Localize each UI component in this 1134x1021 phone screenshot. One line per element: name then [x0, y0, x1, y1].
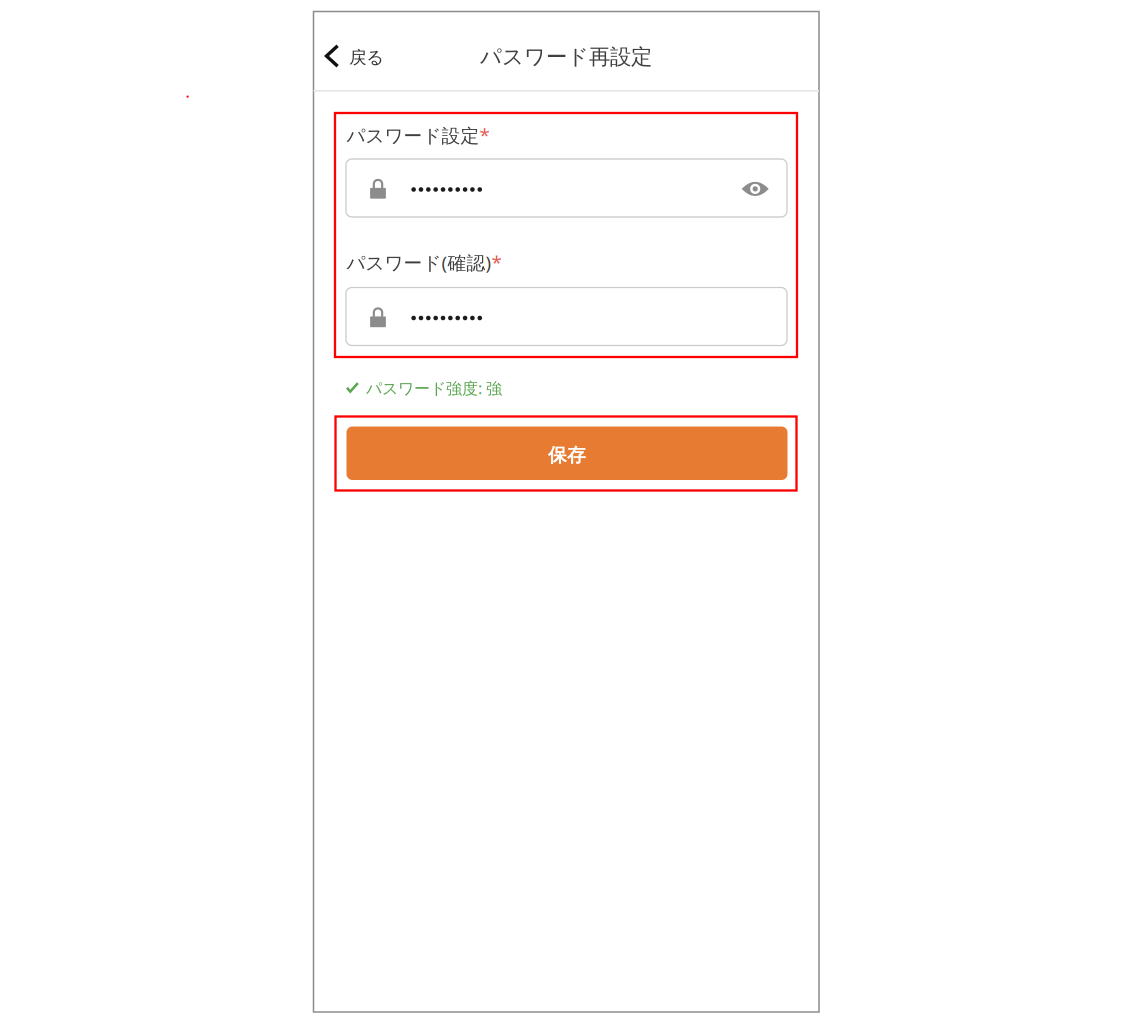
staticText: パスワード再設定	[480, 44, 652, 70]
staticText: *	[479, 123, 489, 147]
button[interactable]: パスワードを表示	[728, 167, 782, 210]
button[interactable]: 戻る	[324, 33, 386, 78]
button[interactable]	[346, 287, 787, 345]
button[interactable]	[346, 159, 787, 217]
staticText: 戻る	[349, 47, 384, 68]
staticText: 保存	[548, 444, 586, 467]
staticText: パスワード設定	[346, 124, 479, 147]
staticText: パスワード(確認)	[346, 250, 491, 275]
button[interactable]: 保存	[346, 426, 787, 480]
staticText: パスワード強度: 強	[366, 377, 502, 399]
staticText: *	[491, 250, 501, 275]
